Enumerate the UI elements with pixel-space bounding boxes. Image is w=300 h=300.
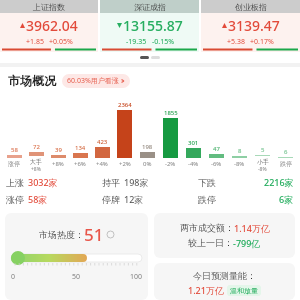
staticText: 60.03%用户看涨 — [67, 76, 119, 86]
staticText: +0.17% — [250, 37, 274, 47]
staticText: 2216家 — [264, 176, 294, 188]
staticText: 134 — [75, 144, 86, 152]
staticText: -19.35 — [126, 37, 147, 47]
staticText: 跌停 — [280, 160, 292, 168]
staticText: +2% — [119, 160, 131, 168]
staticText: +5.38 — [227, 37, 245, 47]
staticText: 12家 — [124, 193, 144, 205]
staticText: 3139.47 — [228, 16, 280, 35]
staticText: 423 — [97, 138, 108, 146]
staticText: 5 — [261, 146, 265, 154]
staticText: 50 — [54, 272, 98, 282]
staticText: 小手 — [257, 158, 269, 166]
button[interactable]: 创业板指 — [201, 0, 300, 52]
staticText: +4% — [96, 160, 108, 168]
staticText: -8% — [234, 160, 245, 168]
staticText: +1.85 — [26, 37, 44, 47]
staticText: 0 — [11, 272, 54, 282]
staticText: 温和放量 — [230, 286, 258, 295]
staticText: 39 — [55, 146, 62, 154]
staticText: 198 — [142, 143, 153, 151]
staticText: 上证指数 — [33, 2, 65, 12]
staticText: -2% — [165, 160, 176, 168]
staticText: 3962.04 — [26, 16, 78, 35]
staticText: +6% — [74, 160, 86, 168]
staticText: 51 — [84, 223, 104, 246]
staticText: +8% — [31, 166, 41, 173]
staticText: +0.05% — [49, 37, 73, 47]
staticText: 8 — [238, 147, 242, 155]
staticText: 58 — [11, 146, 18, 154]
staticText: -8% — [258, 166, 267, 173]
staticText: 跌停 — [198, 194, 216, 205]
staticText: 深证成指 — [134, 2, 166, 12]
staticText: 较上一日： — [188, 237, 233, 248]
staticText: 今日预测量能： — [193, 270, 256, 281]
staticText: 100 — [98, 272, 142, 282]
staticText: 持平 — [102, 177, 120, 188]
staticText: 47 — [213, 145, 220, 153]
staticText: 上涨 — [6, 177, 24, 188]
staticText: 大手 — [30, 158, 42, 166]
button[interactable]: 60.03%用户看涨 — [62, 74, 130, 88]
staticText: 市场热度： — [39, 229, 84, 240]
button[interactable]: 深证成指 — [100, 0, 199, 52]
staticText: -0.15% — [152, 37, 174, 47]
staticText: -6% — [211, 160, 222, 168]
button[interactable]: 两市成交额： — [154, 213, 295, 258]
staticText: +8% — [52, 160, 64, 168]
staticText: -4% — [188, 160, 199, 168]
staticText: 1.14万亿 — [234, 222, 270, 234]
staticText: 两市成交额： — [180, 222, 234, 233]
staticText: 市场概况 — [8, 73, 56, 88]
staticText: 13155.87 — [123, 16, 183, 35]
staticText: 6 — [284, 148, 288, 156]
staticText: 创业板指 — [235, 2, 267, 12]
staticText: 301 — [188, 139, 199, 147]
other: 说明 — [107, 231, 114, 238]
staticText: 198家 — [124, 176, 149, 188]
button[interactable]: 上证指数 — [0, 0, 98, 52]
staticText: 72 — [33, 143, 40, 151]
staticText: 2364 — [118, 101, 132, 109]
staticText: 58家 — [28, 193, 48, 205]
staticText: 1.21万亿 — [188, 284, 224, 296]
button[interactable]: 市场热度： — [5, 213, 148, 300]
staticText: 1855 — [164, 109, 178, 117]
staticText: 停牌 — [102, 194, 120, 205]
staticText: -799亿 — [233, 237, 261, 249]
staticText: 涨停 — [6, 194, 24, 205]
staticText: 涨停 — [8, 160, 20, 168]
button[interactable]: 今日预测量能： — [154, 263, 295, 300]
staticText: 下跌 — [198, 177, 216, 188]
staticText: 3032家 — [28, 176, 58, 188]
staticText: 0% — [143, 160, 152, 168]
staticText: 6家 — [279, 193, 294, 205]
